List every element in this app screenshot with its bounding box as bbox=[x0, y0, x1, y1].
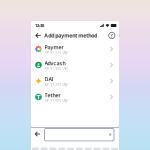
button[interactable]: Tether bbox=[31, 89, 119, 105]
staticText: Paymer bbox=[45, 43, 64, 51]
staticText: 12:30 bbox=[35, 23, 44, 28]
staticText: FOP $1,000 USD bbox=[45, 67, 68, 70]
button[interactable]: Paymer bbox=[31, 41, 119, 57]
staticText: ? bbox=[110, 32, 113, 39]
button[interactable]: Advcash bbox=[31, 57, 119, 73]
staticText: Tether bbox=[45, 91, 61, 99]
button[interactable]: Back bbox=[34, 131, 40, 137]
staticText: FOP $1,575 USD bbox=[45, 51, 68, 54]
staticText: ✕ bbox=[109, 132, 112, 137]
staticText: Add payment method bbox=[44, 32, 97, 39]
staticText: Advcash bbox=[45, 59, 66, 67]
button[interactable]: Help bbox=[109, 32, 115, 39]
button[interactable]: Back bbox=[35, 32, 41, 38]
button[interactable]: ✕ bbox=[44, 128, 114, 141]
staticText: FOP $1,000 USD bbox=[45, 99, 68, 102]
staticText: DAI bbox=[45, 75, 54, 83]
staticText: FOP $1,200 USD bbox=[45, 83, 68, 86]
button[interactable]: DAI bbox=[31, 73, 119, 89]
